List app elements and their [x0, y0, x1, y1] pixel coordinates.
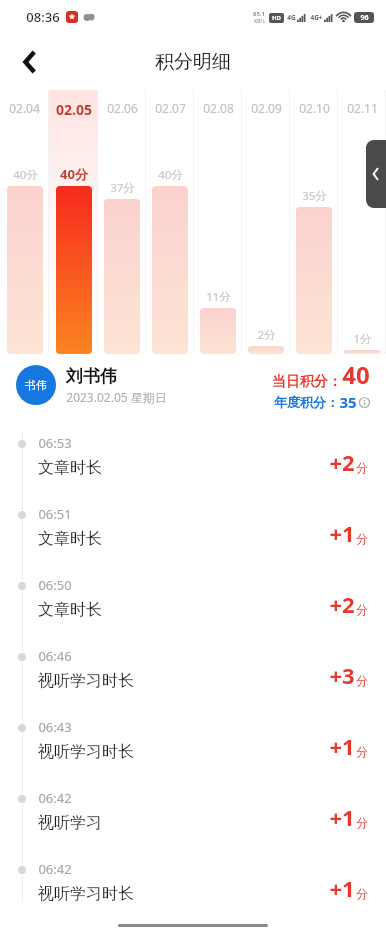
- button[interactable]: 02.10: [290, 90, 338, 354]
- staticText: +3: [329, 660, 355, 690]
- staticText: 分: [356, 602, 368, 617]
- staticText: 书伟: [25, 378, 47, 392]
- button[interactable]: 02.09: [242, 90, 290, 354]
- staticText: 02.07: [155, 100, 186, 116]
- staticText: KB/s: [254, 18, 265, 25]
- button[interactable]: 06:50: [0, 568, 386, 639]
- staticText: 分: [356, 673, 368, 688]
- staticText: 40分: [60, 165, 88, 183]
- staticText: 分: [356, 744, 368, 759]
- staticText: 02.08: [203, 100, 234, 116]
- button[interactable]: 书伟: [16, 354, 370, 416]
- staticText: 1分: [353, 331, 372, 347]
- staticText: ❀: [69, 13, 75, 21]
- button[interactable]: 06:43: [0, 710, 386, 781]
- staticText: 视听学习时长: [38, 884, 134, 904]
- staticText: +1: [329, 731, 355, 761]
- staticText: 06:46: [38, 647, 72, 665]
- button[interactable]: 06:42: [0, 781, 386, 852]
- staticText: 02.05: [56, 100, 92, 119]
- staticText: +1: [329, 873, 355, 903]
- staticText: 40: [342, 358, 370, 391]
- staticText: 11分: [206, 289, 231, 305]
- staticText: 文章时长: [38, 529, 102, 549]
- staticText: 2023.02.05 星期日: [66, 389, 167, 405]
- staticText: 65.1: [253, 10, 265, 18]
- staticText: 分: [356, 886, 368, 901]
- staticText: +2: [329, 589, 355, 619]
- button[interactable]: Back: [8, 40, 52, 84]
- staticText: 2分: [257, 327, 276, 343]
- staticText: 40分: [158, 167, 183, 183]
- staticText: HD: [272, 14, 281, 22]
- button[interactable]: 06:46: [0, 639, 386, 710]
- button[interactable]: 06:53: [0, 426, 386, 497]
- button[interactable]: 02.08: [194, 90, 242, 354]
- staticText: 06:42: [38, 789, 72, 807]
- staticText: 35: [339, 392, 357, 412]
- staticText: 积分明细: [155, 50, 231, 74]
- button[interactable]: Previous week: [366, 140, 386, 208]
- staticText: 06:50: [38, 576, 72, 594]
- staticText: 02.04: [9, 100, 40, 116]
- staticText: 06:42: [38, 860, 72, 878]
- staticText: 视听学习时长: [38, 742, 134, 762]
- staticText: +1: [329, 802, 355, 832]
- staticText: +1: [329, 518, 355, 548]
- staticText: 02.06: [107, 100, 138, 116]
- button[interactable]: 02.11: [338, 90, 386, 354]
- staticText: 年度积分：: [274, 394, 339, 410]
- staticText: 文章时长: [38, 458, 102, 478]
- staticText: 视听学习: [38, 813, 102, 833]
- staticText: 06:53: [38, 434, 72, 452]
- staticText: 文章时长: [38, 600, 102, 620]
- staticText: 02.10: [299, 100, 330, 116]
- staticText: 视听学习时长: [38, 671, 134, 691]
- staticText: 4G: [287, 13, 296, 22]
- staticText: 分: [356, 531, 368, 546]
- staticText: +2: [329, 447, 355, 477]
- staticText: 02.09: [251, 100, 282, 116]
- button[interactable]: 06:42: [0, 852, 386, 923]
- button[interactable]: 02.05: [49, 90, 98, 354]
- staticText: 02.11: [347, 100, 378, 116]
- button[interactable]: 02.07: [146, 90, 194, 354]
- staticText: 06:43: [38, 718, 72, 736]
- staticText: 08:36: [26, 8, 60, 26]
- staticText: 刘书伟: [66, 366, 117, 387]
- staticText: 分: [356, 460, 368, 475]
- staticText: 40分: [13, 167, 38, 183]
- staticText: 分: [356, 815, 368, 830]
- button[interactable]: 02.06: [98, 90, 146, 354]
- staticText: 96: [360, 13, 369, 23]
- staticText: 35分: [302, 188, 327, 204]
- staticText: 4G+: [310, 13, 323, 22]
- button[interactable]: 02.04: [0, 90, 49, 354]
- staticText: 06:51: [38, 505, 72, 523]
- staticText: 当日积分：: [272, 373, 342, 391]
- staticText: 37分: [110, 180, 135, 196]
- button[interactable]: 06:51: [0, 497, 386, 568]
